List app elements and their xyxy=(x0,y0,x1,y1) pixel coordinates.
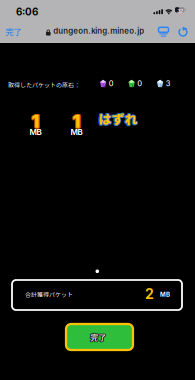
staticText: 合計獲得パケット xyxy=(25,290,73,299)
staticText: 完了 xyxy=(89,331,105,342)
staticText: 1 xyxy=(72,111,80,132)
staticText: 取得したパケットの原石： xyxy=(8,81,80,89)
button[interactable]: Reload xyxy=(177,26,188,38)
staticText: 完了 xyxy=(5,25,21,37)
staticText: 1 xyxy=(72,110,80,131)
staticText: はずれ xyxy=(98,110,137,128)
staticText: 1 xyxy=(31,111,39,132)
staticText: はずれ xyxy=(99,109,138,127)
staticText: 1 xyxy=(73,112,81,133)
staticText: 1 xyxy=(73,111,81,132)
staticText: 完了 xyxy=(89,331,105,343)
staticText: MB xyxy=(29,127,41,137)
staticText: 完了 xyxy=(90,332,106,343)
staticText: 1 xyxy=(32,111,40,132)
staticText: 1 xyxy=(31,110,39,131)
button[interactable]: Page settings xyxy=(158,26,169,38)
staticText: 完了 xyxy=(90,330,106,342)
staticText: 完了 xyxy=(90,331,106,343)
staticText: 完了 xyxy=(90,331,106,342)
staticText: はずれ xyxy=(98,109,137,128)
button[interactable]: 完了 xyxy=(3,24,23,39)
staticText: MB xyxy=(160,291,170,298)
staticText: 0 xyxy=(109,79,114,88)
staticText: 1 xyxy=(31,111,39,132)
staticText: 1 xyxy=(32,110,40,131)
staticText: はずれ xyxy=(99,110,138,128)
staticText: 37 xyxy=(177,8,183,14)
staticText: はずれ xyxy=(98,109,137,128)
staticText: 1 xyxy=(32,112,40,133)
staticText: MB xyxy=(70,127,82,137)
staticText: 6:06 xyxy=(16,6,38,18)
staticText: 1 xyxy=(31,110,39,131)
staticText: 2 xyxy=(145,285,154,302)
staticText: 1 xyxy=(31,112,39,133)
staticText: 完了 xyxy=(91,331,107,343)
staticText: 1 xyxy=(72,110,80,131)
staticText: はずれ xyxy=(98,110,137,129)
staticText: 3 xyxy=(166,79,171,88)
staticText: 完了 xyxy=(89,332,105,343)
staticText: 0 xyxy=(137,79,142,88)
staticText: 1 xyxy=(72,112,80,133)
button[interactable]: 完了 xyxy=(66,324,133,350)
staticText: 1 xyxy=(73,110,81,131)
staticText: 1 xyxy=(72,111,80,132)
staticText: 1 xyxy=(72,112,80,133)
staticText: 完了 xyxy=(90,332,106,343)
staticText: 1 xyxy=(31,112,39,133)
staticText: はずれ xyxy=(98,108,137,127)
staticText: dungeon.king.mineo.jp xyxy=(53,26,144,36)
staticText: はずれ xyxy=(99,109,138,128)
staticText: はずれ xyxy=(98,109,137,127)
